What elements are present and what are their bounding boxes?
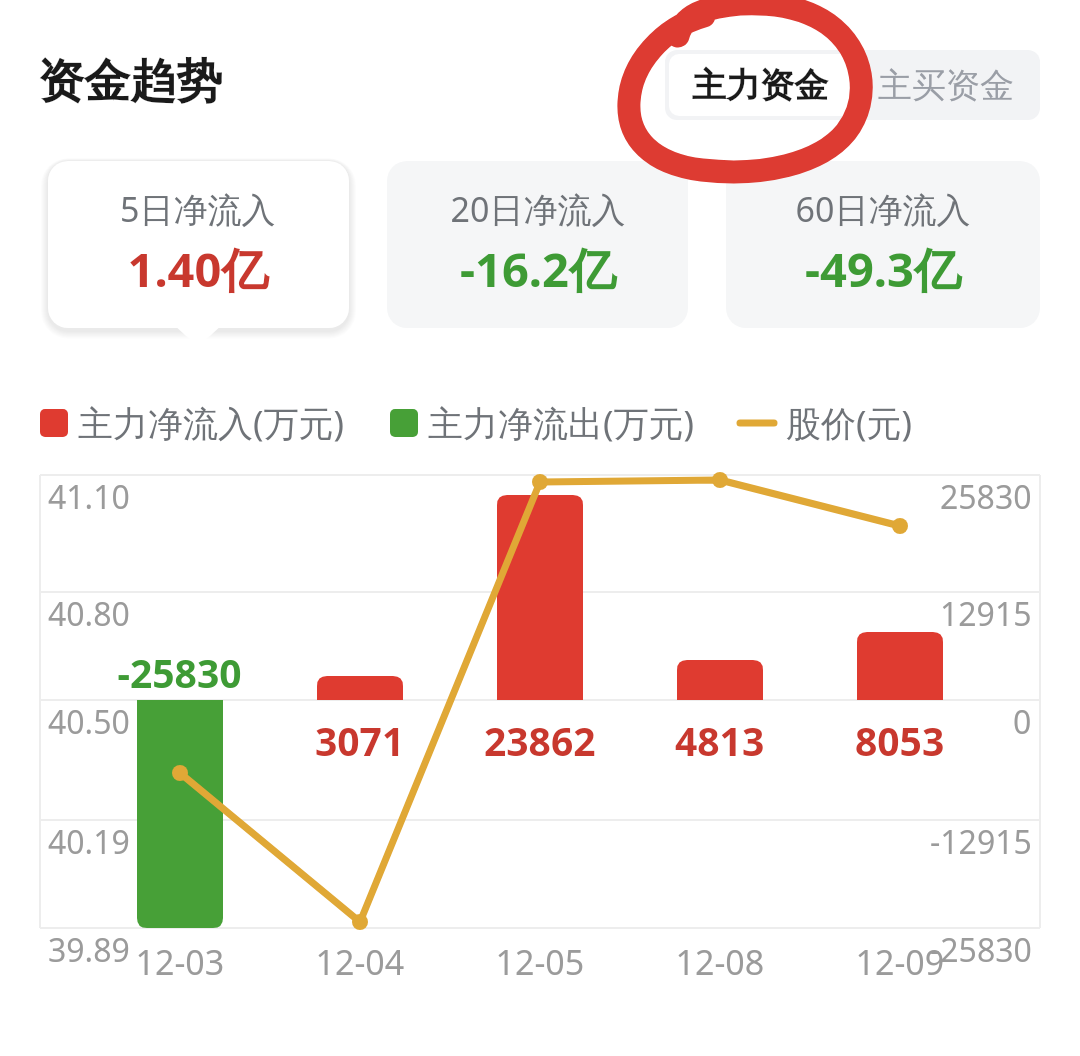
button[interactable]: 5日净流入 1.40亿 — [48, 161, 349, 328]
button[interactable]: 20日净流入 -16.2亿 — [387, 161, 688, 328]
button[interactable]: 主买资金 — [853, 50, 1040, 120]
button[interactable]: 主力资金 — [665, 50, 853, 120]
button[interactable]: 60日净流入 -49.3亿 — [726, 161, 1040, 328]
